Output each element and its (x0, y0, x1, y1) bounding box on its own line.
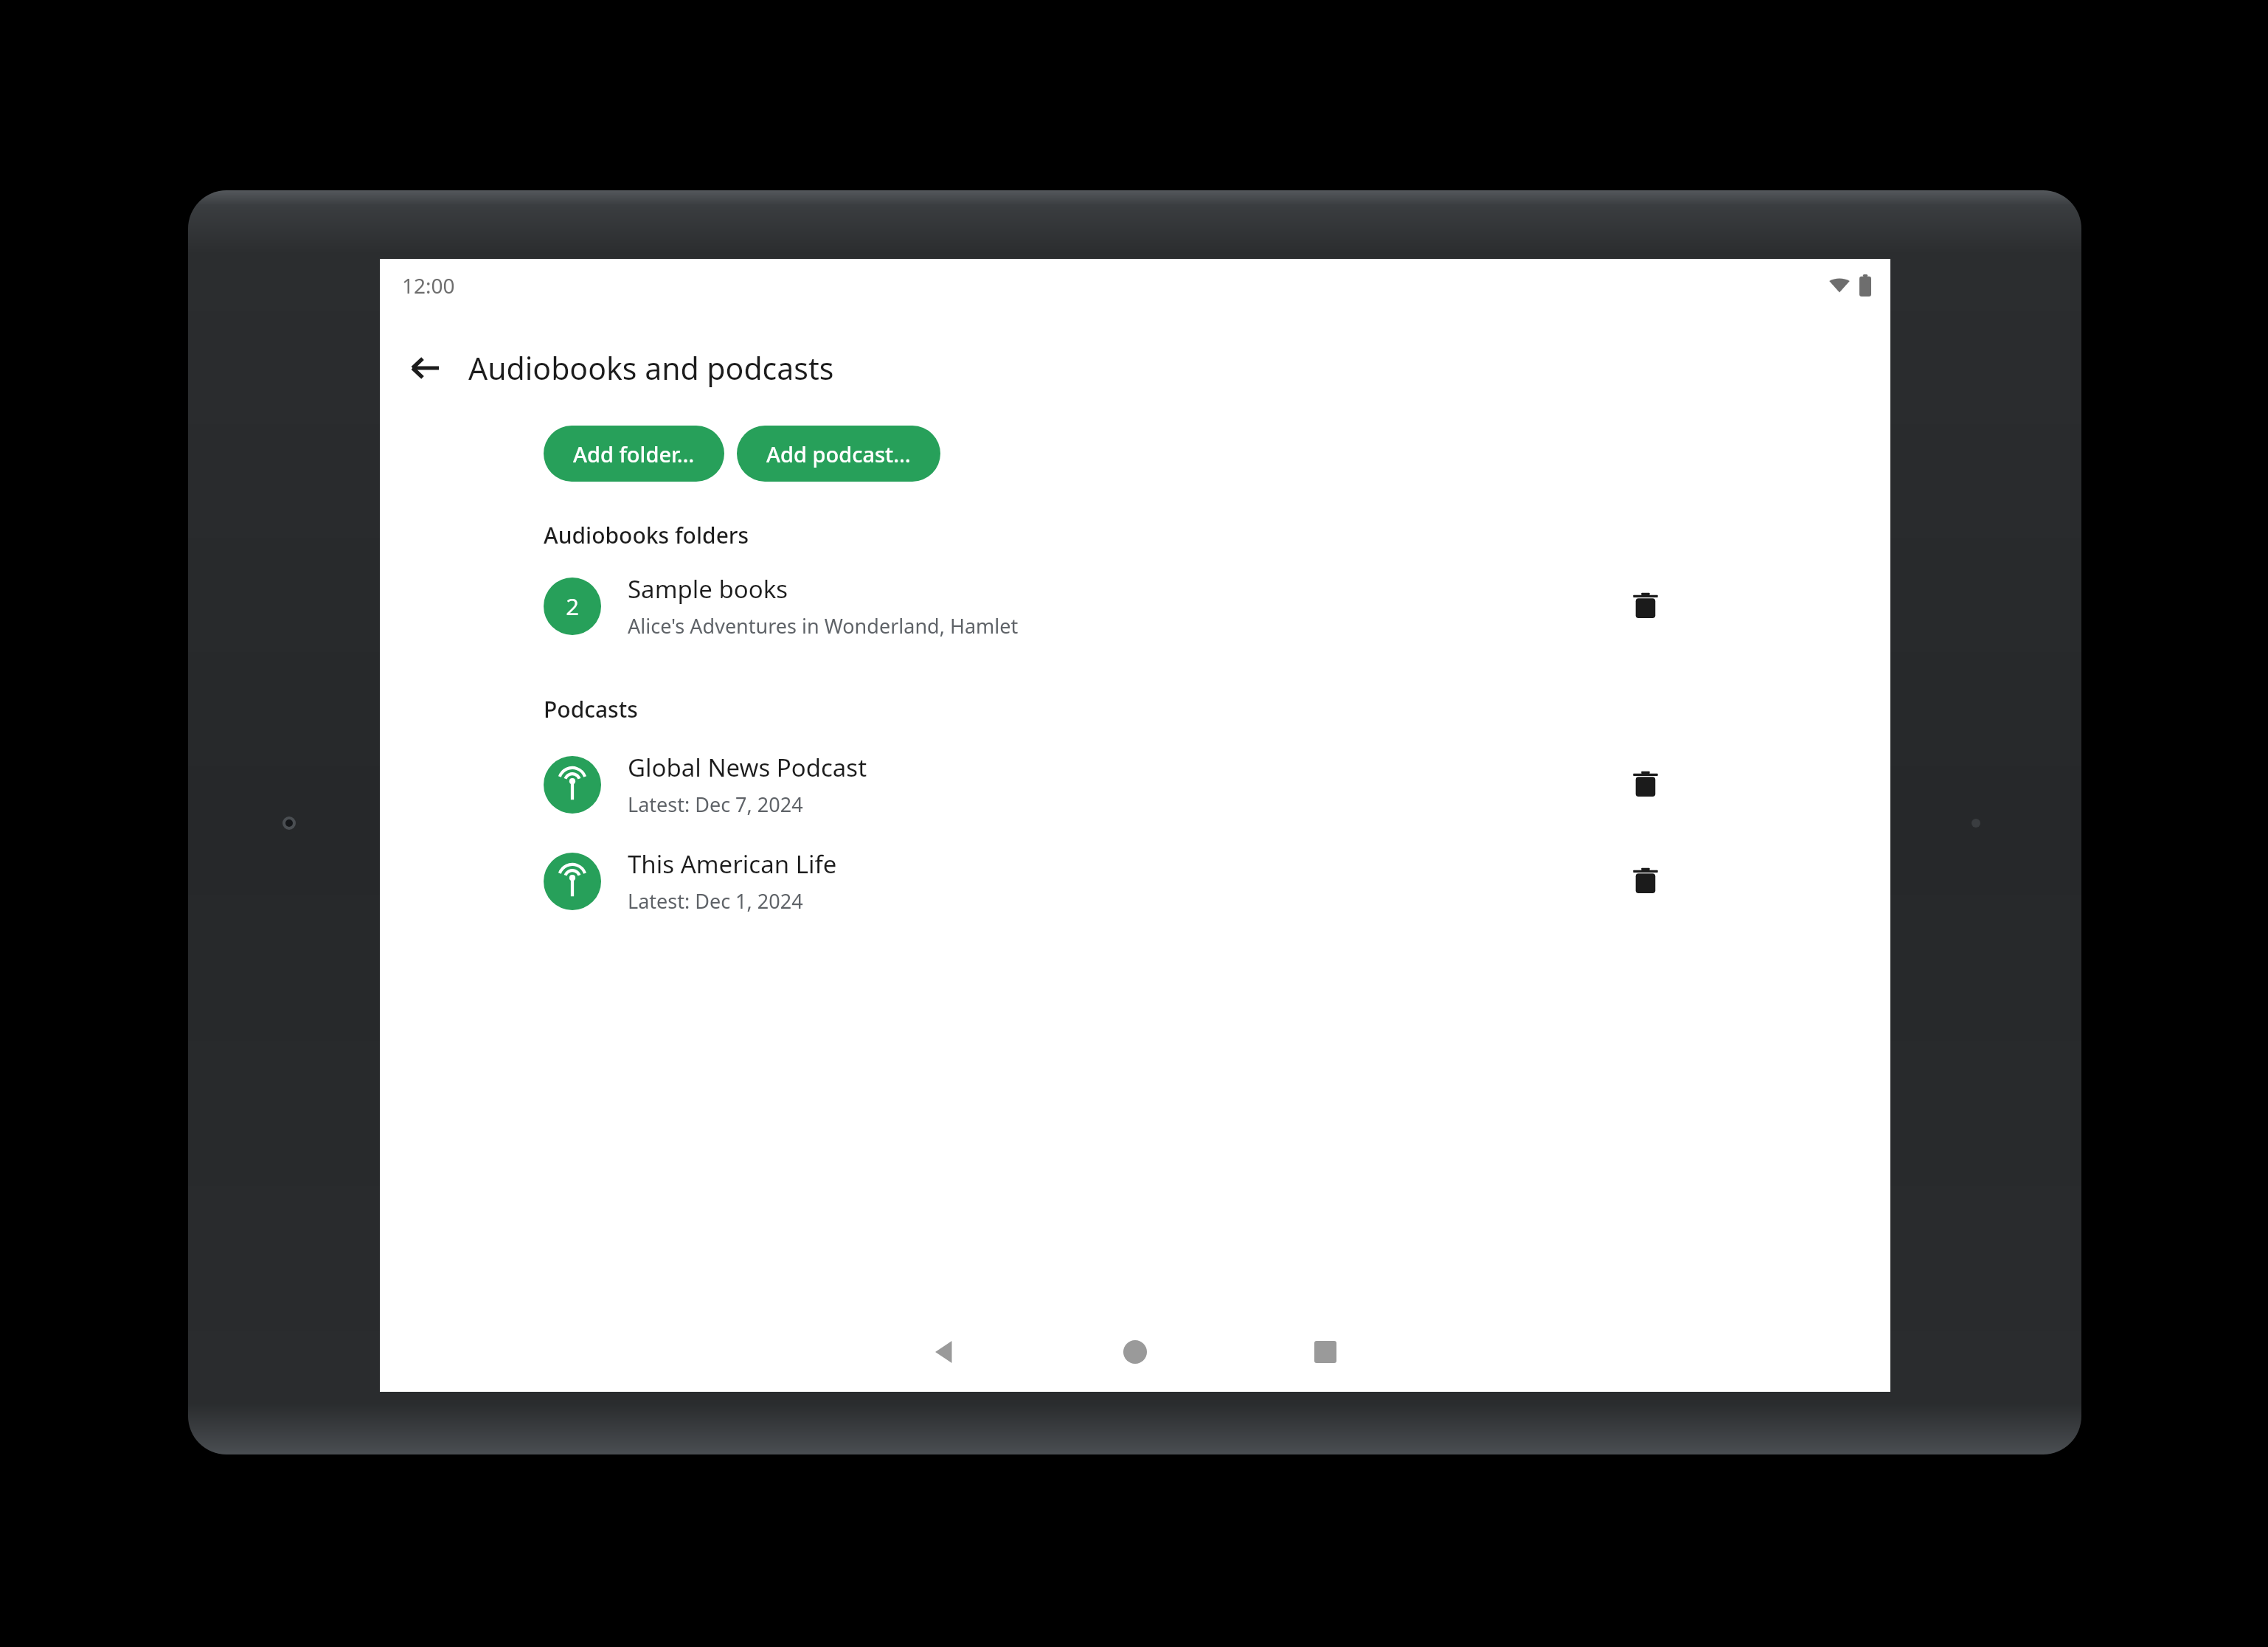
staticText: Audiobooks folders (544, 520, 749, 550)
staticText: 12:00 (402, 271, 455, 299)
button[interactable]: Add folder… (544, 426, 724, 482)
staticText: This American Life (628, 847, 837, 881)
button[interactable]: Home (1095, 1312, 1176, 1392)
button[interactable]: Back (904, 1312, 985, 1392)
button[interactable]: Add podcast… (737, 426, 940, 482)
staticText: Podcasts (544, 694, 638, 724)
staticText: Add folder… (573, 440, 695, 468)
staticText: 2 (566, 591, 579, 622)
button[interactable]: 2 (380, 572, 1890, 639)
staticText: Alice's Adventures in Wonderland, Hamlet (628, 612, 1019, 639)
staticText: Add podcast… (766, 440, 911, 468)
staticText: Global News Podcast (628, 751, 867, 784)
staticText: Audiobooks and podcasts (468, 347, 834, 389)
button[interactable]: Delete This American Life (1615, 850, 1676, 912)
button[interactable]: Global News Podcast (380, 751, 1890, 818)
staticText: Latest: Dec 1, 2024 (628, 887, 803, 915)
staticText: Sample books (628, 572, 788, 606)
button[interactable]: Back (396, 339, 455, 398)
staticText: Latest: Dec 7, 2024 (628, 791, 803, 818)
button[interactable]: This American Life (380, 847, 1890, 915)
button[interactable]: Delete Sample books (1615, 575, 1676, 637)
button[interactable]: Recent apps (1285, 1312, 1366, 1392)
button[interactable]: Delete Global News Podcast (1615, 754, 1676, 816)
